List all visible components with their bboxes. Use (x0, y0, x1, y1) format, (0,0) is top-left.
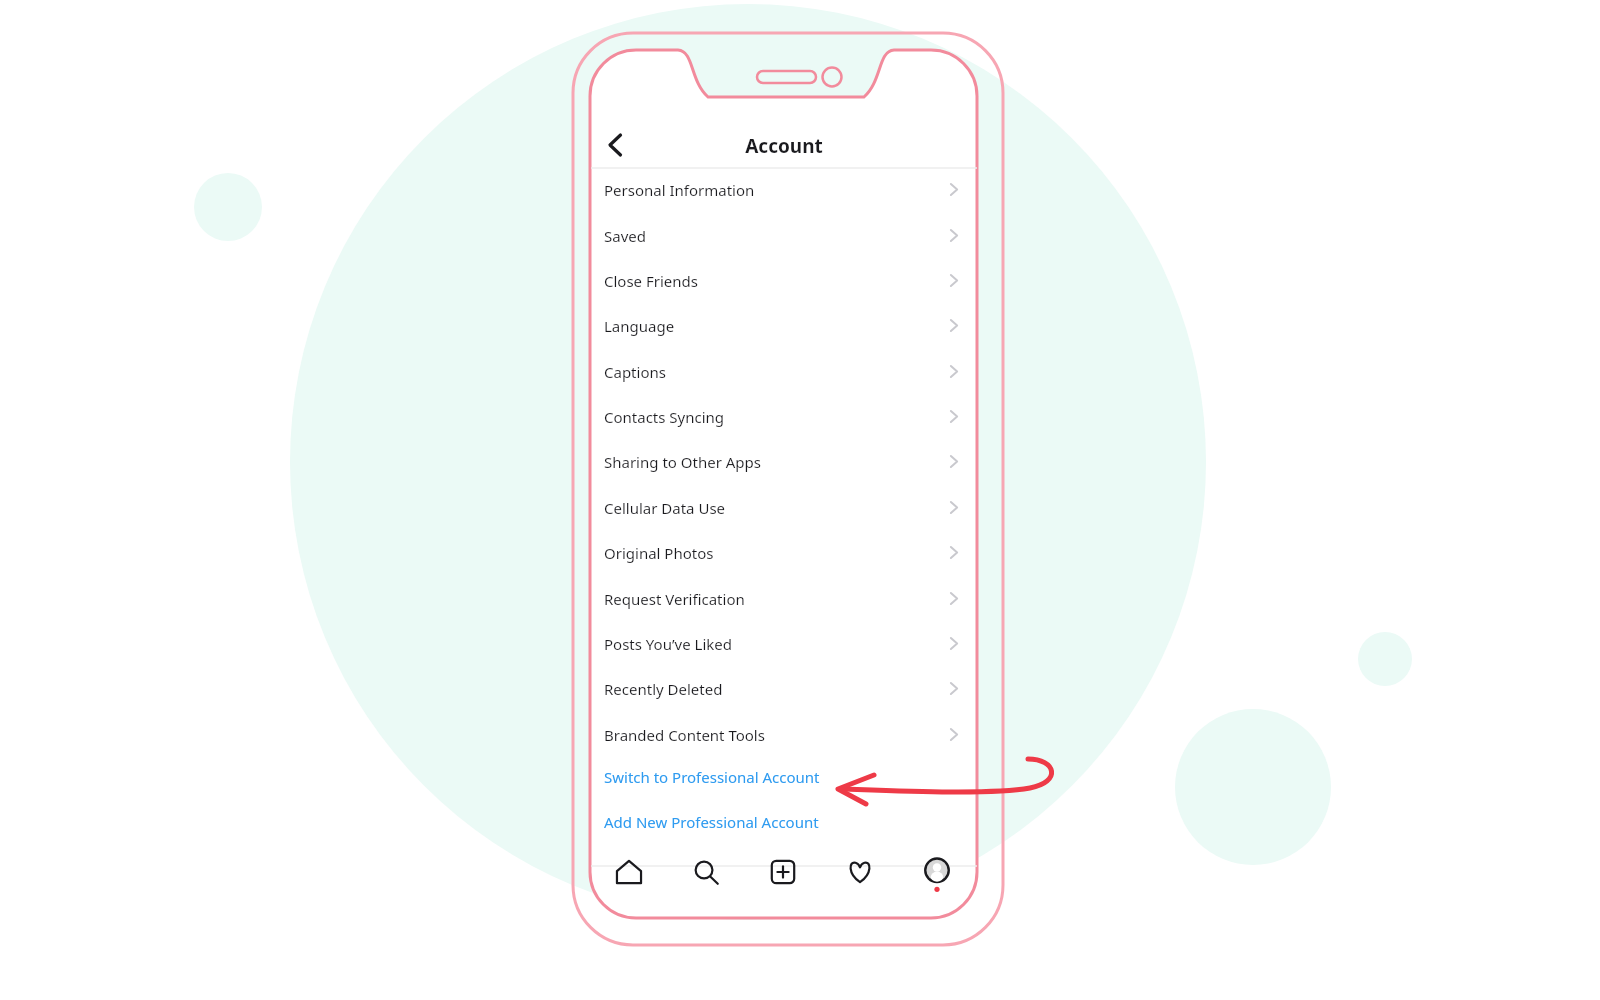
button[interactable]: Home (605, 848, 653, 896)
button[interactable]: Activity (836, 848, 884, 896)
button[interactable]: Language (591, 303, 977, 348)
button[interactable]: Branded Content Tools (591, 712, 977, 757)
staticText: Language (604, 316, 675, 336)
button[interactable]: Close Friends (591, 258, 977, 303)
button[interactable]: Contacts Syncing (591, 394, 977, 439)
button[interactable]: Back (594, 124, 636, 166)
staticText: Posts You’ve Liked (604, 634, 732, 654)
button[interactable]: Create (759, 848, 807, 896)
staticText: Sharing to Other Apps (604, 452, 761, 472)
staticText: Original Photos (604, 543, 714, 563)
button[interactable]: Switch to Professional Account (591, 754, 977, 799)
button[interactable]: Original Photos (591, 530, 977, 575)
button[interactable]: Personal Information (591, 167, 977, 212)
staticText: Close Friends (604, 271, 698, 291)
staticText: Switch to Professional Account (604, 767, 820, 787)
button[interactable]: Posts You’ve Liked (591, 621, 977, 666)
staticText: Recently Deleted (604, 679, 723, 699)
button[interactable]: Profile (913, 848, 961, 896)
button[interactable]: Add New Professional Account (591, 799, 977, 844)
staticText: Contacts Syncing (604, 407, 725, 427)
staticText: Branded Content Tools (604, 725, 765, 745)
staticText: Request Verification (604, 589, 745, 609)
staticText: Personal Information (604, 180, 755, 200)
button[interactable]: Sharing to Other Apps (591, 439, 977, 484)
button[interactable]: Recently Deleted (591, 666, 977, 711)
button[interactable]: Cellular Data Use (591, 485, 977, 530)
staticText: Account (745, 133, 823, 159)
button[interactable]: Captions (591, 349, 977, 394)
button[interactable]: Saved (591, 213, 977, 258)
staticText: Cellular Data Use (604, 498, 726, 518)
staticText: Saved (604, 226, 646, 246)
button[interactable]: Request Verification (591, 576, 977, 621)
staticText: Captions (604, 362, 666, 382)
button[interactable]: Search (682, 848, 730, 896)
staticText: Add New Professional Account (604, 812, 819, 832)
